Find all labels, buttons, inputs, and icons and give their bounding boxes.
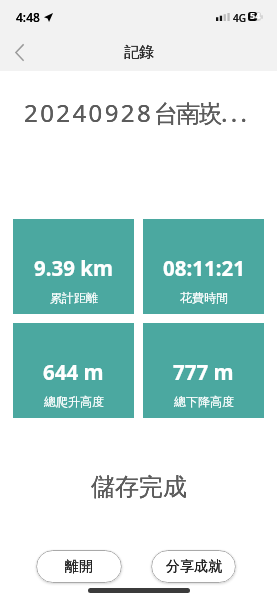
staticText: 儲存完成 (91, 472, 187, 502)
staticText: 總爬升高度 (44, 394, 104, 409)
button[interactable]: Back (3, 36, 36, 69)
staticText: ... (221, 96, 251, 129)
button[interactable]: 08:11:21 (143, 219, 264, 314)
staticText: 台南崁 (154, 99, 221, 129)
staticText: 累計距離 (50, 290, 98, 305)
staticText: 記錄 (124, 43, 154, 62)
staticText: 20240928 (24, 96, 154, 129)
staticText: 4:48 (16, 9, 40, 25)
button[interactable]: 777 m (143, 323, 264, 418)
staticText: 記錄 (124, 43, 154, 62)
staticText: 台南崁 (154, 99, 221, 129)
button[interactable]: 分享成就 (151, 550, 236, 583)
staticText: 儲存完成 (91, 472, 187, 502)
staticText: 20240928 (24, 96, 154, 129)
staticText: ... (221, 96, 251, 129)
staticText: 9.39 km (34, 254, 113, 282)
staticText: ... (221, 96, 251, 129)
staticText: 777 m (173, 358, 234, 386)
staticText: 4G (233, 11, 246, 25)
staticText: 離開 (65, 558, 93, 576)
staticText: 08:11:21 (163, 254, 245, 282)
button[interactable]: 644 m (13, 323, 134, 418)
staticText: 4:48 (16, 9, 40, 25)
staticText: 4:48 (16, 9, 40, 25)
staticText: 4G (233, 11, 246, 25)
staticText: 分享成就 (166, 558, 222, 576)
staticText: 離開 (65, 558, 93, 576)
staticText: 20240928 (24, 96, 154, 129)
staticText: 台南崁 (154, 99, 221, 129)
staticText: 分享成就 (166, 558, 222, 576)
button[interactable]: 離開 (36, 550, 122, 583)
staticText: 總下降高度 (174, 394, 234, 409)
button[interactable]: 9.39 km (13, 219, 134, 314)
staticText: 記錄 (124, 43, 154, 62)
staticText: 4G (233, 11, 246, 25)
staticText: 花費時間 (180, 290, 228, 305)
staticText: 離開 (65, 558, 93, 576)
staticText: 54 (250, 9, 261, 21)
staticText: 644 m (43, 358, 104, 386)
staticText: 儲存完成 (91, 472, 187, 502)
staticText: 分享成就 (166, 558, 222, 576)
